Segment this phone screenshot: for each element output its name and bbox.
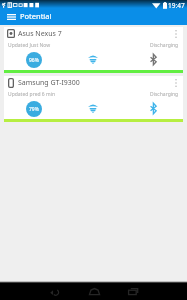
button[interactable]: Wi-Fi xyxy=(63,55,123,64)
button[interactable]: 79% xyxy=(26,101,42,117)
staticText: Samsung GT-I9300 xyxy=(18,78,80,88)
staticText: Discharging xyxy=(150,91,179,98)
staticText: 79% xyxy=(29,106,39,113)
staticText: 96% xyxy=(29,57,39,64)
button[interactable]: Wi-Fi xyxy=(63,104,123,113)
staticText: Updated pred 6 min xyxy=(8,91,56,98)
button[interactable]: 96% xyxy=(26,52,42,68)
staticText: 19:47 xyxy=(168,1,185,10)
button[interactable]: Recent apps xyxy=(124,283,142,300)
staticText: Asus Nexus 7 xyxy=(18,29,62,39)
button[interactable]: Bluetooth xyxy=(123,54,183,65)
button[interactable]: More options xyxy=(170,28,181,39)
button[interactable]: More options xyxy=(170,77,181,88)
button[interactable]: Home xyxy=(85,283,103,300)
staticText: Potential xyxy=(20,11,52,21)
button[interactable]: Asus Nexus 7 xyxy=(4,27,183,73)
button[interactable]: Back xyxy=(45,283,63,300)
staticText: Updated Just Now xyxy=(8,42,51,49)
staticText: Discharging xyxy=(150,42,179,49)
button[interactable]: Open navigation menu xyxy=(6,11,17,22)
button[interactable]: Bluetooth xyxy=(123,103,183,114)
button[interactable]: Samsung GT-I9300 xyxy=(4,76,183,122)
